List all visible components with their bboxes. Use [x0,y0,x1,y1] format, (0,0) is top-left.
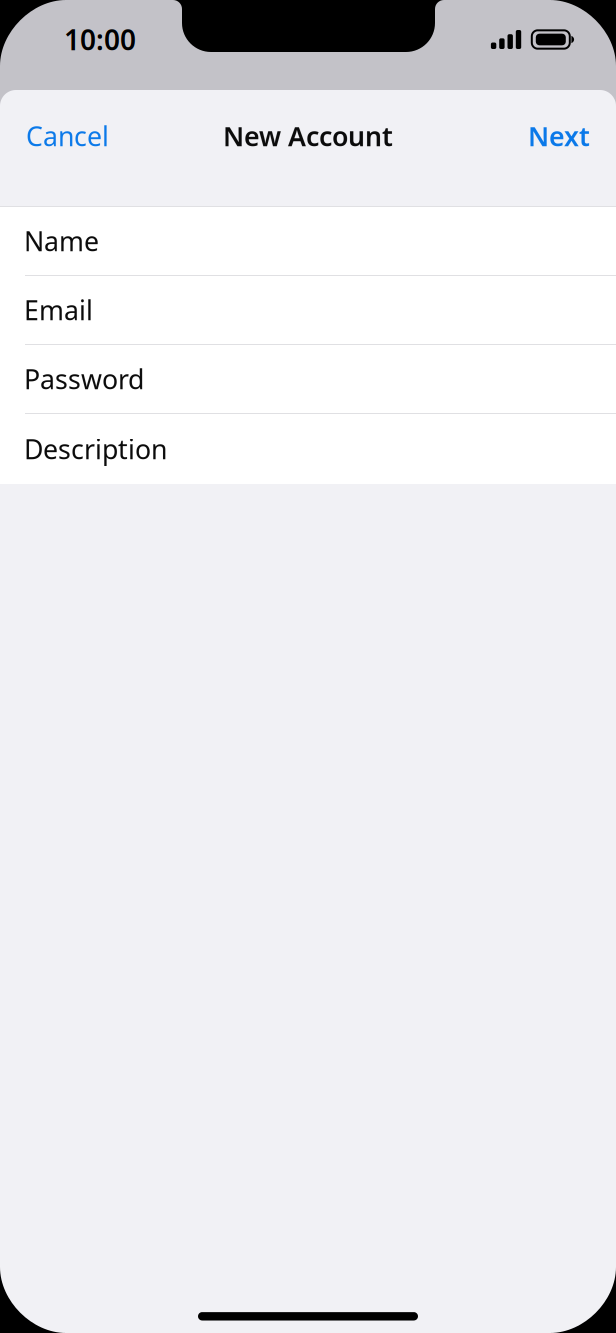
staticText: Password [24,361,144,397]
button[interactable]: Cancel [0,113,135,159]
staticText: Email [24,292,93,328]
button[interactable]: Name [0,207,616,276]
button[interactable]: Email [0,276,616,345]
staticText: New Account [223,118,393,154]
staticText: Description [24,431,167,467]
staticText: Name [24,223,99,259]
staticText: Next [528,118,590,154]
button[interactable]: Password [0,345,616,414]
staticText: 10:00 [64,21,136,58]
button[interactable]: Description [0,414,616,484]
button[interactable]: Next [502,113,616,159]
staticText: Cancel [26,118,109,154]
